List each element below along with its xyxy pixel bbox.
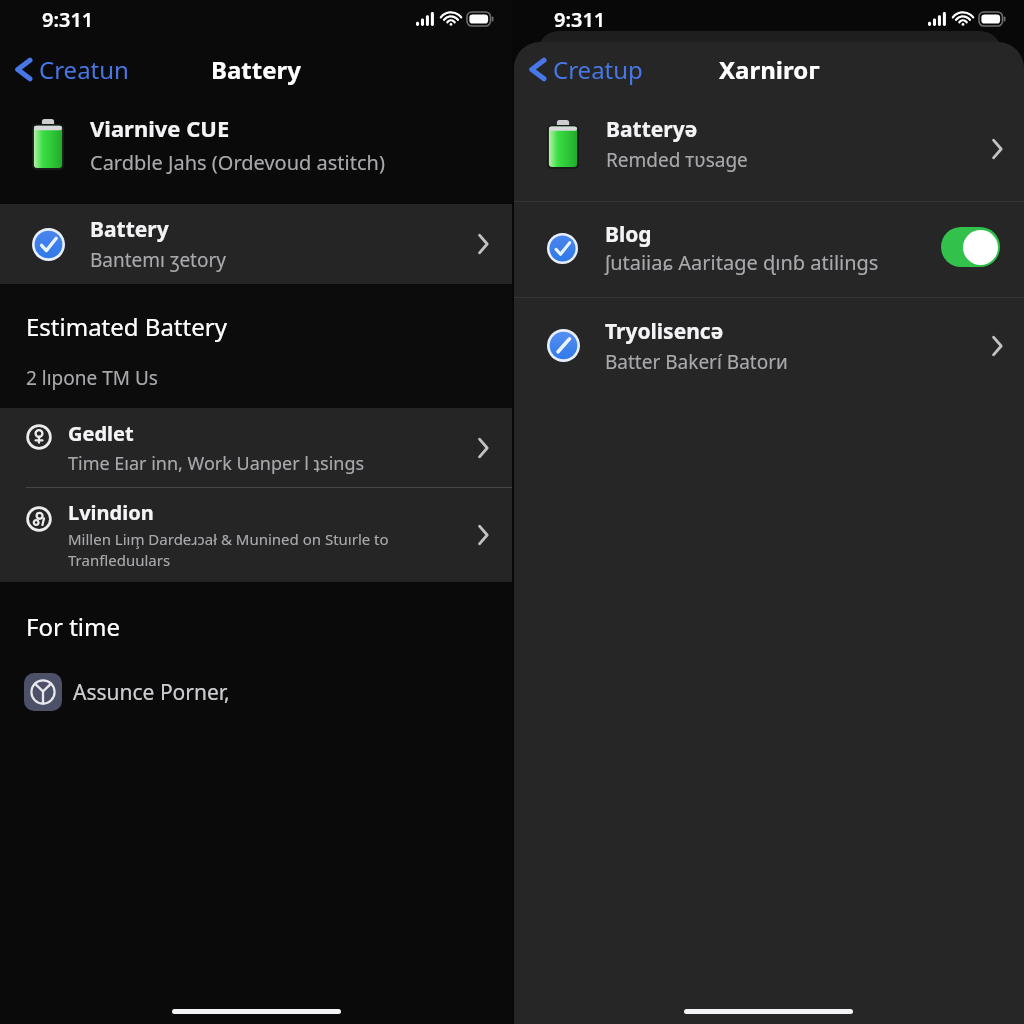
button[interactable]: Viarnive CUE (0, 100, 512, 188)
button[interactable]: Tryolisencə (514, 298, 1024, 393)
staticText: 9:311 (554, 6, 606, 33)
staticText: Estimated Battery (26, 310, 227, 343)
staticText: Blog (605, 220, 652, 249)
staticText: ʃutaiiaɕ Aaritage ɖınɓ atilings (605, 249, 879, 276)
staticText: Batter Bakerí Batorи (605, 349, 788, 375)
staticText: Tryolisencə (605, 317, 724, 346)
staticText: Xarniroг (719, 53, 820, 86)
staticText: 9:311 (42, 6, 94, 33)
staticText: Creatun (39, 53, 129, 86)
staticText: Viarnive CUE (90, 113, 230, 143)
staticText: Millen Liım̧ Dardeɹɔał & Munined on Stuı… (68, 529, 389, 571)
staticText: Gedlet (68, 420, 134, 447)
staticText: Time Eıar inn, Work Uanper l ʇsings (68, 451, 365, 476)
staticText: Battery (90, 215, 169, 244)
staticText: 2 lıpone TM Us (26, 365, 158, 391)
staticText: Batteryə (606, 115, 698, 144)
staticText: Assunce Porner, (73, 678, 230, 707)
button[interactable]: Gedlet (0, 408, 512, 487)
button[interactable]: Batteryə (514, 96, 1024, 201)
staticText: Cardble Jahs (Ordevoud astitch) (90, 149, 385, 176)
staticText: For time (26, 610, 120, 643)
button[interactable]: Back to Creatun (0, 49, 137, 90)
button[interactable]: Blog (514, 202, 1024, 297)
staticText: Battery (211, 53, 301, 86)
button[interactable]: Assunce Porner, (0, 673, 512, 711)
staticText: Bantemı ʒetory (90, 247, 227, 273)
button[interactable]: Lvindion (0, 488, 512, 582)
staticText: Remded тʋsage (606, 147, 748, 173)
staticText: Lvindion (68, 499, 154, 526)
staticText: Creatup (553, 53, 643, 86)
button[interactable]: Back to Creatup (514, 49, 651, 90)
button[interactable]: Toggle setting (941, 227, 1000, 267)
button[interactable]: Battery (0, 204, 512, 284)
